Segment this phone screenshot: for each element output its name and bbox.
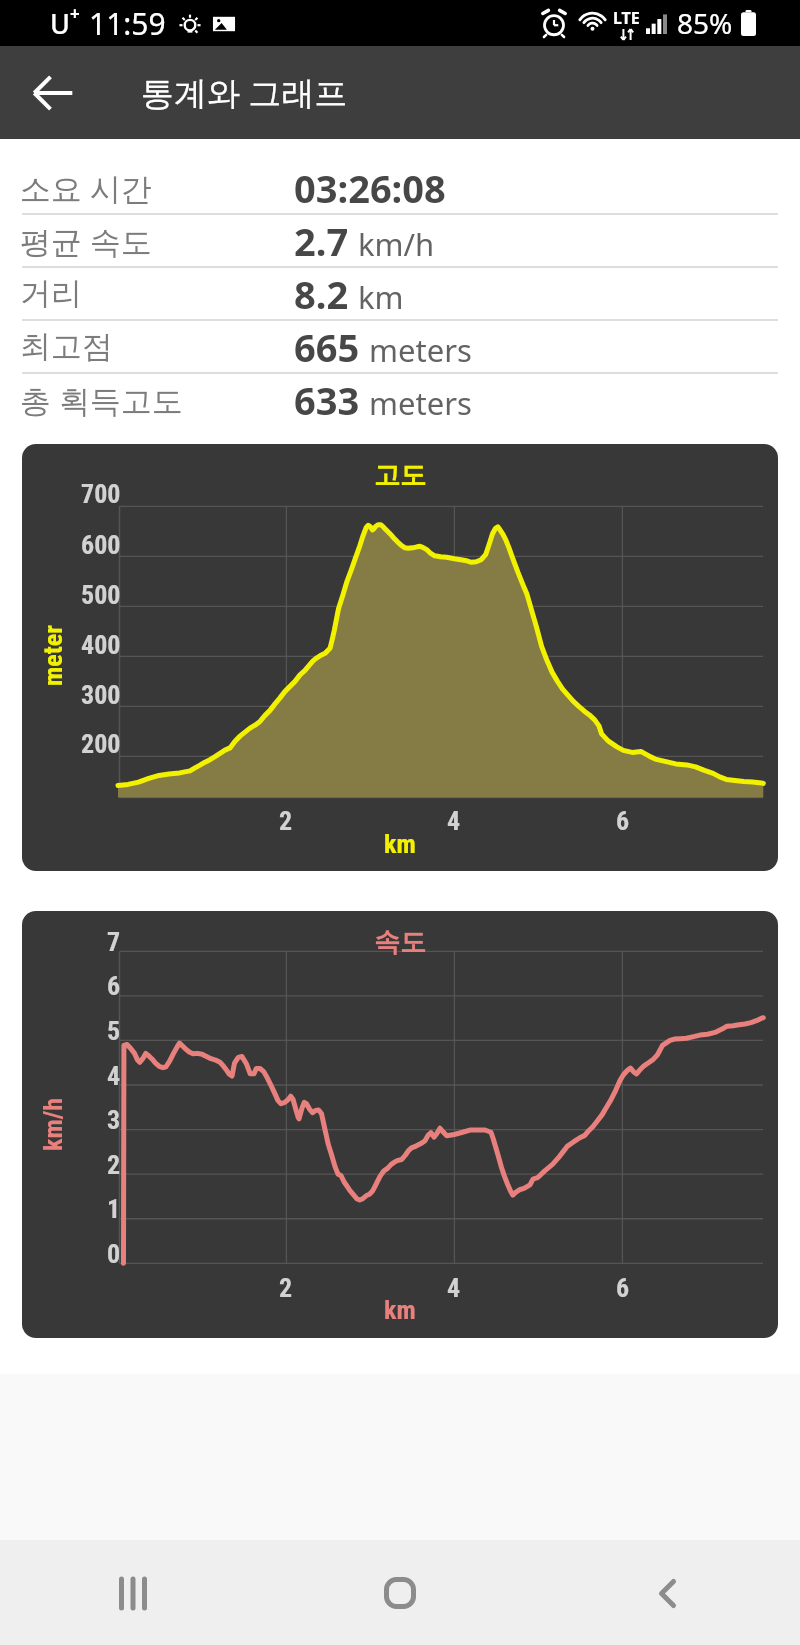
staticText: 2.7 (294, 215, 349, 266)
staticText: + (70, 2, 80, 25)
staticText: 2 (279, 1273, 293, 1303)
button[interactable]: Home (353, 1546, 447, 1640)
button[interactable]: 총 획득고도 (0, 374, 800, 425)
staticText: LTE (613, 7, 640, 29)
staticText: 6 (616, 1273, 630, 1303)
staticText: 11:59 (89, 3, 166, 44)
staticText: 300 (81, 680, 121, 710)
staticText: 1 (107, 1194, 121, 1224)
staticText: 평균 속도 (20, 220, 153, 262)
staticText: km (384, 829, 416, 859)
staticText: 4 (447, 1273, 461, 1303)
staticText: 거리 (20, 274, 82, 313)
button[interactable]: 최고점 (0, 321, 800, 372)
staticText: 2 (279, 806, 293, 836)
staticText: 85% (677, 4, 733, 42)
staticText: 633 (294, 374, 360, 425)
button[interactable]: Recent apps (86, 1546, 180, 1640)
staticText: 500 (81, 580, 121, 610)
staticText: 속도 (374, 926, 426, 959)
staticText: 665 (294, 321, 360, 372)
staticText: 최고점 (20, 327, 113, 366)
staticText: 4 (447, 806, 461, 836)
button[interactable]: 소요 시간 (0, 162, 800, 213)
staticText: 통계와 그래프 (141, 70, 348, 115)
staticText: 2 (107, 1150, 121, 1180)
staticText: 8.2 (294, 268, 349, 319)
button[interactable]: Back (0, 46, 106, 139)
staticText: 6 (107, 971, 121, 1001)
staticText: meters (369, 382, 472, 424)
staticText: 7 (107, 927, 121, 957)
staticText: 6 (616, 806, 630, 836)
staticText: meter (38, 625, 68, 686)
staticText: 03:26:08 (294, 162, 446, 213)
staticText: km (384, 1295, 416, 1325)
staticText: 0 (107, 1239, 121, 1269)
staticText: 소요 시간 (20, 167, 153, 209)
staticText: 총 획득고도 (20, 379, 184, 421)
staticText: 4 (107, 1061, 121, 1091)
staticText: meters (369, 329, 472, 371)
staticText: 200 (81, 729, 121, 759)
button[interactable]: Back (620, 1546, 714, 1640)
button[interactable]: 7 (22, 911, 778, 1338)
staticText: 400 (81, 630, 121, 660)
staticText: km (358, 276, 404, 318)
staticText: 700 (81, 479, 121, 509)
staticText: 5 (107, 1016, 121, 1046)
staticText: km/h (38, 1097, 68, 1151)
staticText: U (50, 5, 70, 42)
staticText: km/h (358, 223, 435, 265)
staticText: 고도 (374, 459, 426, 492)
staticText: 600 (81, 530, 121, 560)
button[interactable]: 평균 속도 (0, 215, 800, 266)
button[interactable]: 700 (22, 444, 778, 871)
button[interactable]: 거리 (0, 268, 800, 319)
staticText: 3 (107, 1105, 121, 1135)
